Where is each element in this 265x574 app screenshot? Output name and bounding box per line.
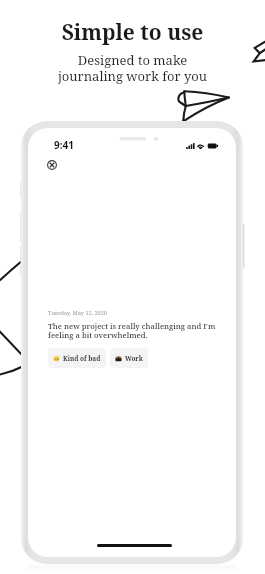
button[interactable]: Kind of bad	[48, 348, 106, 368]
button[interactable]: Close	[47, 160, 57, 170]
staticText: 9:41	[54, 138, 74, 152]
staticText: Simple to use	[0, 18, 265, 47]
staticText: Work	[125, 354, 143, 363]
staticText: Kind of bad	[63, 354, 101, 363]
staticText: The new project is really challenging an…	[48, 321, 224, 340]
staticText: Designed to make journaling work for you	[0, 51, 265, 85]
staticText: Tuesday, May 12, 2020	[48, 309, 107, 317]
button[interactable]: Work	[110, 348, 148, 368]
